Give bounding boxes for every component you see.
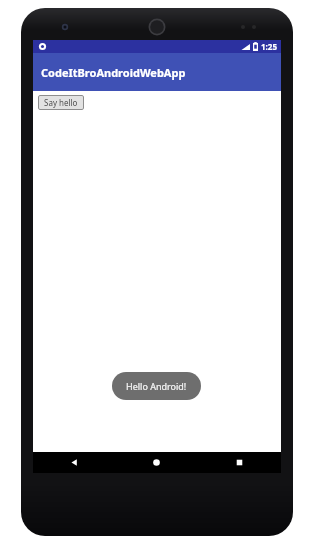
staticText: CodeItBroAndroidWebApp (41, 65, 186, 80)
button[interactable]: Say hello (38, 95, 84, 110)
button[interactable]: Home (115, 452, 198, 473)
staticText: 1:25 (261, 41, 277, 52)
staticText: Hello Android! (126, 380, 187, 392)
button[interactable]: CodeItBroAndroidWebApp (33, 53, 281, 91)
button[interactable]: Recent apps (198, 452, 281, 473)
button[interactable]: Back (33, 452, 115, 473)
staticText: Say hello (44, 97, 78, 108)
